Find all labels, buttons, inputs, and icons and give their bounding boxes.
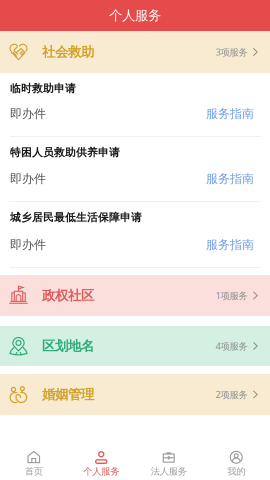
staticText: 2项服务: [216, 388, 248, 401]
button[interactable]: 法人服务: [135, 443, 202, 480]
staticText: 临时救助申请: [10, 82, 76, 95]
staticText: 首页: [25, 466, 43, 477]
button[interactable]: 区划地名: [0, 326, 270, 366]
staticText: 城乡居民最低生活保障申请: [10, 211, 142, 224]
staticText: 个人服务: [109, 7, 161, 24]
staticText: 个人服务: [83, 466, 119, 477]
staticText: 1项服务: [216, 289, 248, 302]
staticText: 政权社区: [42, 287, 94, 304]
button[interactable]: 我的: [202, 443, 270, 480]
staticText: 即办件: [10, 106, 46, 121]
staticText: 我的: [227, 466, 245, 477]
staticText: 即办件: [10, 237, 46, 252]
staticText: 4项服务: [216, 340, 248, 352]
staticText: 区划地名: [42, 338, 94, 354]
button[interactable]: 婚姻管理: [0, 374, 270, 415]
staticText: 婚姻管理: [42, 386, 94, 403]
staticText: 服务指南: [206, 237, 254, 252]
staticText: 服务指南: [206, 106, 254, 121]
button[interactable]: 临时救助申请: [0, 73, 270, 137]
button[interactable]: 特困人员救助供养申请: [0, 137, 270, 202]
button[interactable]: 城乡居民最低生活保障申请: [0, 202, 270, 268]
button[interactable]: 首页: [0, 443, 67, 480]
staticText: 法人服务: [151, 466, 187, 477]
button[interactable]: 政权社区: [0, 275, 270, 316]
staticText: 特困人员救助供养申请: [10, 146, 120, 159]
staticText: 社会救助: [42, 44, 94, 60]
staticText: 服务指南: [206, 171, 254, 186]
button[interactable]: 个人服务: [67, 443, 135, 480]
staticText: 即办件: [10, 171, 46, 186]
staticText: 3项服务: [216, 46, 248, 58]
button[interactable]: 社会救助: [0, 31, 270, 73]
